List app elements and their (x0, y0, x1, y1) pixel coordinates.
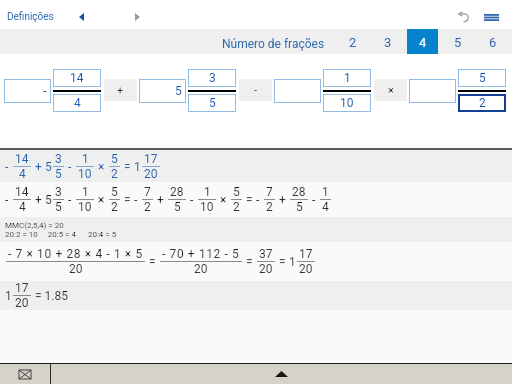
staticText: 3 (384, 35, 392, 50)
button[interactable]: 4 (405, 29, 440, 54)
button[interactable]: Expand (51, 364, 512, 384)
button[interactable]: Previous (68, 4, 94, 30)
staticText: 20 (15, 296, 29, 310)
staticText: 5 (111, 152, 118, 166)
button[interactable]: Menu (478, 4, 504, 30)
staticText: 1 (5, 289, 12, 303)
staticText: 28 (170, 185, 184, 199)
staticText: 5 (45, 193, 52, 207)
staticText: - (65, 160, 75, 174)
staticText: 2 (111, 167, 118, 181)
staticText: - (254, 84, 258, 97)
staticText: 2 (144, 200, 151, 214)
staticText: 2 (111, 200, 118, 214)
staticText: 3 (55, 152, 62, 166)
staticText: + (154, 193, 167, 207)
staticText: + (32, 193, 45, 207)
staticText: 2 (233, 200, 240, 214)
button[interactable]: empty field (274, 79, 321, 103)
button[interactable]: Next (124, 4, 150, 30)
staticText: - 7 × 10 + 28 × 4 - 1 × 5 (8, 247, 143, 261)
staticText: 5 (55, 167, 62, 181)
staticText: - (5, 160, 12, 174)
staticText: × (388, 84, 394, 97)
staticText: 20:2 = 10 20:5 = 4 20:4 = 5 (5, 230, 117, 239)
staticText: 4 (19, 167, 26, 181)
staticText: 37 (259, 247, 273, 261)
staticText: - (134, 193, 141, 207)
staticText: - (187, 193, 197, 207)
button[interactable]: 1 (323, 69, 371, 87)
staticText: 20 (299, 262, 313, 276)
button[interactable]: Definições (7, 11, 54, 23)
staticText: 4 (419, 35, 427, 50)
staticText: = (146, 255, 159, 269)
button[interactable]: 5 (188, 94, 236, 112)
staticText: - 70 + 112 - 5 (162, 247, 240, 261)
staticText: 10 (200, 200, 214, 214)
staticText: 7 (144, 185, 151, 199)
staticText: 2 (349, 35, 357, 50)
button[interactable]: 2 (458, 94, 506, 112)
staticText: 2 (266, 200, 273, 214)
staticText: 10 (78, 200, 92, 214)
staticText: - (5, 193, 12, 207)
button[interactable]: × (374, 79, 407, 101)
button[interactable]: 6 (475, 29, 510, 54)
staticText: - (256, 193, 263, 207)
staticText: 17 (299, 247, 313, 261)
staticText: 1 (322, 185, 329, 199)
button[interactable]: 4 (53, 94, 101, 112)
button[interactable]: 2 (335, 29, 370, 54)
button[interactable]: Undo (450, 4, 476, 30)
staticText: 5 (296, 200, 303, 214)
button[interactable]: empty field (409, 79, 456, 103)
staticText: 1 (204, 185, 211, 199)
staticText: 2 (479, 96, 486, 110)
staticText: 5 (55, 200, 62, 214)
staticText: = (243, 193, 256, 207)
button[interactable]: 10 (323, 94, 371, 112)
staticText: 3 (55, 185, 62, 199)
staticText: 17 (144, 152, 158, 166)
staticText: = (276, 255, 289, 269)
staticText: 10 (78, 167, 92, 181)
staticText: 20 (259, 262, 273, 276)
staticText: 1 (289, 255, 296, 269)
staticText: + (32, 160, 45, 174)
staticText: 5 (111, 185, 118, 199)
staticText: 4 (74, 96, 81, 110)
button[interactable]: 3 (370, 29, 405, 54)
staticText: × (217, 193, 230, 207)
staticText: 4 (322, 200, 329, 214)
staticText: 5 (454, 35, 462, 50)
staticText: 20 (144, 167, 158, 181)
staticText: 20 (194, 262, 208, 276)
button[interactable]: - (239, 79, 272, 101)
staticText: 14 (15, 185, 29, 199)
staticText: × (95, 160, 108, 174)
staticText: 1 (134, 160, 141, 174)
staticText: 20 (69, 262, 83, 276)
staticText: 28 (292, 185, 306, 199)
staticText: 17 (15, 281, 29, 295)
staticText: = (121, 193, 134, 207)
button[interactable]: 5 (139, 79, 186, 103)
staticText: 1 (82, 185, 89, 199)
button[interactable]: 5 (440, 29, 475, 54)
staticText: = (243, 255, 256, 269)
button[interactable]: 3 (188, 69, 236, 87)
staticText: 1 (344, 71, 351, 85)
staticText: 3 (209, 71, 216, 85)
button[interactable]: + (104, 79, 137, 101)
staticText: 10 (340, 96, 354, 110)
staticText: × (95, 193, 108, 207)
staticText: 14 (70, 71, 84, 85)
button[interactable]: 14 (53, 69, 101, 87)
staticText: + (117, 84, 124, 97)
staticText: 7 (266, 185, 273, 199)
button[interactable]: - (4, 79, 51, 103)
button[interactable]: Mail (0, 364, 50, 384)
button[interactable]: 5 (458, 69, 506, 87)
staticText: 5 (174, 200, 181, 214)
